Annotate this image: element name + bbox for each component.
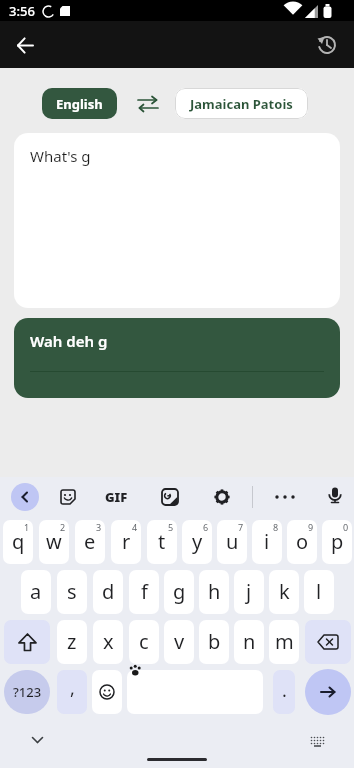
staticText: 5 [168, 521, 174, 533]
staticText: 4 [132, 521, 138, 533]
staticText: s [67, 578, 77, 605]
button[interactable]: j [234, 570, 264, 614]
staticText: 8 [273, 521, 279, 533]
button[interactable]: , [57, 670, 87, 714]
staticText: m [275, 628, 294, 655]
staticText: GIF [105, 488, 128, 506]
staticText: o [296, 528, 309, 555]
staticText: 3 [96, 521, 102, 533]
staticText: 6 [203, 521, 209, 533]
button[interactable]: v [164, 620, 194, 664]
staticText: x [103, 628, 114, 655]
staticText: b [208, 628, 221, 655]
staticText: e [84, 528, 96, 555]
staticText: c [139, 628, 149, 655]
button[interactable]: o [287, 520, 317, 564]
staticText: r [122, 528, 131, 555]
staticText: What's g [30, 146, 91, 166]
button[interactable] [274, 494, 296, 500]
staticText: Wah deh g [30, 331, 108, 351]
button[interactable]: d [93, 570, 123, 614]
button[interactable]: z [57, 620, 87, 664]
button[interactable]: . [273, 670, 295, 714]
staticText: z [67, 628, 77, 655]
staticText: Jamaican Patois [190, 95, 293, 113]
button[interactable]: f [129, 570, 159, 614]
staticText: h [208, 578, 221, 605]
button[interactable]: w [39, 520, 69, 564]
staticText: n [243, 628, 256, 655]
button[interactable] [305, 669, 351, 715]
button[interactable]: ?123 [4, 670, 50, 714]
button[interactable]: b [199, 620, 229, 664]
staticText: 3:56 [9, 2, 35, 20]
button[interactable] [308, 732, 326, 750]
button[interactable] [4, 620, 50, 664]
button[interactable] [12, 32, 38, 58]
button[interactable]: Wah deh g [14, 318, 340, 398]
staticText: i [264, 528, 270, 555]
button[interactable] [92, 670, 122, 714]
staticText: w [46, 528, 62, 555]
button[interactable]: p [322, 520, 352, 564]
button[interactable]: s [57, 570, 87, 614]
button[interactable]: a [21, 570, 51, 614]
staticText: f [141, 578, 148, 605]
staticText: , [70, 676, 75, 701]
button[interactable]: English [42, 88, 117, 119]
button[interactable]: n [234, 620, 264, 664]
button[interactable]: GIF [105, 488, 128, 506]
button[interactable] [11, 483, 39, 511]
button[interactable] [136, 92, 160, 116]
staticText: k [279, 578, 290, 605]
button[interactable]: e [75, 520, 105, 564]
button[interactable]: u [217, 520, 247, 564]
staticText: q [12, 528, 25, 555]
button[interactable] [327, 487, 343, 507]
staticText: a [30, 578, 42, 605]
staticText: j [246, 578, 252, 605]
button[interactable]: Jamaican Patois [175, 88, 308, 119]
staticText: d [102, 578, 115, 605]
staticText: English [56, 95, 103, 113]
button[interactable]: i [252, 520, 282, 564]
staticText: ?123 [13, 683, 42, 701]
staticText: v [174, 628, 185, 655]
staticText: . [282, 678, 287, 703]
button[interactable]: y [182, 520, 212, 564]
staticText: u [226, 528, 239, 555]
button[interactable]: x [93, 620, 123, 664]
staticText: t [158, 528, 166, 555]
staticText: 0 [343, 521, 349, 533]
button[interactable]: What's g [14, 133, 340, 308]
button[interactable]: k [269, 570, 299, 614]
button[interactable]: t [147, 520, 177, 564]
button[interactable]: m [269, 620, 299, 664]
button[interactable] [305, 620, 351, 664]
button[interactable]: g [164, 570, 194, 614]
staticText: 1 [24, 521, 30, 533]
button[interactable]: q [3, 520, 33, 564]
button[interactable]: r [111, 520, 141, 564]
staticText: l [316, 578, 322, 605]
button[interactable] [127, 670, 263, 714]
button[interactable]: l [304, 570, 334, 614]
staticText: g [173, 578, 186, 605]
button[interactable] [161, 488, 179, 506]
button[interactable] [314, 32, 340, 58]
staticText: 7 [238, 521, 244, 533]
staticText: 2 [60, 521, 66, 533]
staticText: p [331, 528, 344, 555]
button[interactable] [213, 488, 231, 506]
button[interactable]: c [129, 620, 159, 664]
button[interactable] [59, 488, 77, 506]
button[interactable]: h [199, 570, 229, 614]
staticText: y [192, 528, 203, 555]
button[interactable] [28, 731, 46, 749]
staticText: 9 [308, 521, 314, 533]
